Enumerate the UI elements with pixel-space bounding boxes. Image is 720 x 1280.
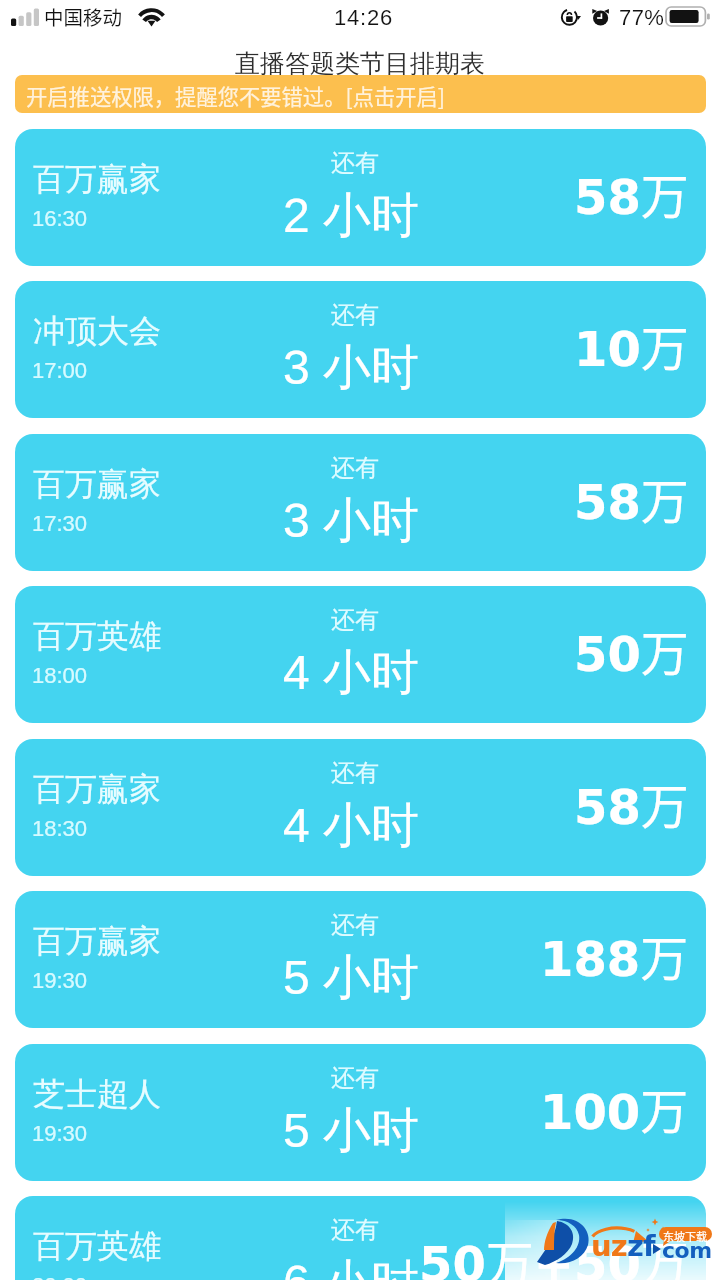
staticText: 50万 (574, 615, 689, 685)
button[interactable]: 百万赢家 (15, 891, 706, 1028)
staticText: 10万 (574, 310, 689, 380)
staticText: 5 小时 (283, 1101, 420, 1161)
staticText: 芝士超人 (33, 1074, 161, 1114)
button[interactable]: 冲顶大会 (15, 281, 706, 418)
staticText: 还有 (331, 605, 379, 635)
staticText: 3 小时 (283, 338, 420, 398)
staticText: 百万英雄 (33, 1226, 161, 1266)
staticText: 17:00 (32, 358, 88, 383)
staticText: 16:30 (32, 206, 88, 231)
staticText: 4 小时 (283, 643, 420, 703)
other: Alarm (591, 7, 611, 28)
staticText: 17:30 (32, 511, 88, 536)
staticText: 100万 (540, 1073, 689, 1143)
staticText: 20:00 (32, 1273, 88, 1280)
button[interactable]: 百万英雄 (15, 586, 706, 723)
staticText: 58万 (574, 158, 689, 228)
button[interactable]: 百万赢家 (15, 739, 706, 876)
staticText: 东坡下载 (663, 1228, 707, 1244)
staticText: 还有 (331, 148, 379, 178)
staticText: 14:26 (334, 5, 394, 30)
staticText: 19:30 (32, 968, 88, 993)
other: Battery 77 percent (666, 7, 711, 27)
staticText: 百万英雄 (33, 616, 161, 656)
staticText: 6 小时 (283, 1253, 420, 1280)
staticText: 还有 (331, 453, 379, 483)
staticText: 58万 (574, 768, 689, 838)
staticText: 还有 (331, 1215, 379, 1245)
staticText: 18:00 (32, 663, 88, 688)
staticText: 百万赢家 (33, 464, 161, 504)
staticText: 58万 (574, 463, 689, 533)
staticText: 还有 (331, 1063, 379, 1093)
staticText: 2 小时 (283, 186, 420, 246)
button[interactable]: 开启推送权限，提醒您不要错过。[点击开启] (15, 75, 706, 113)
staticText: uzzf (591, 1229, 655, 1263)
staticText: 还有 (331, 300, 379, 330)
staticText: 77% (619, 5, 665, 30)
staticText: 5 小时 (283, 948, 420, 1008)
staticText: 3 小时 (283, 491, 420, 551)
staticText: 百万赢家 (33, 159, 161, 199)
staticText: 冲顶大会 (33, 311, 161, 351)
staticText: 19:30 (32, 1121, 88, 1146)
staticText: 百万赢家 (33, 921, 161, 961)
button[interactable]: 芝士超人 (15, 1044, 706, 1181)
staticText: 50万+50万 (419, 1225, 689, 1280)
staticText: 直播答题类节目排期表 (235, 48, 485, 79)
button[interactable]: 百万英雄 (15, 1196, 706, 1280)
staticText: 中国移动 (44, 2, 123, 30)
button[interactable]: 百万赢家 (15, 434, 706, 571)
staticText: 还有 (331, 910, 379, 940)
staticText: 开启推送权限，提醒您不要错过。[点击开启] (26, 80, 446, 111)
other: Rotation lock (560, 8, 581, 27)
staticText: 188万 (540, 920, 689, 990)
staticText: 18:30 (32, 816, 88, 841)
staticText: 还有 (331, 758, 379, 788)
staticText: com (662, 1238, 712, 1264)
button[interactable]: 百万赢家 (15, 129, 706, 266)
staticText: 百万赢家 (33, 769, 161, 809)
other: Wi-Fi (139, 6, 164, 28)
staticText: 4 小时 (283, 796, 420, 856)
